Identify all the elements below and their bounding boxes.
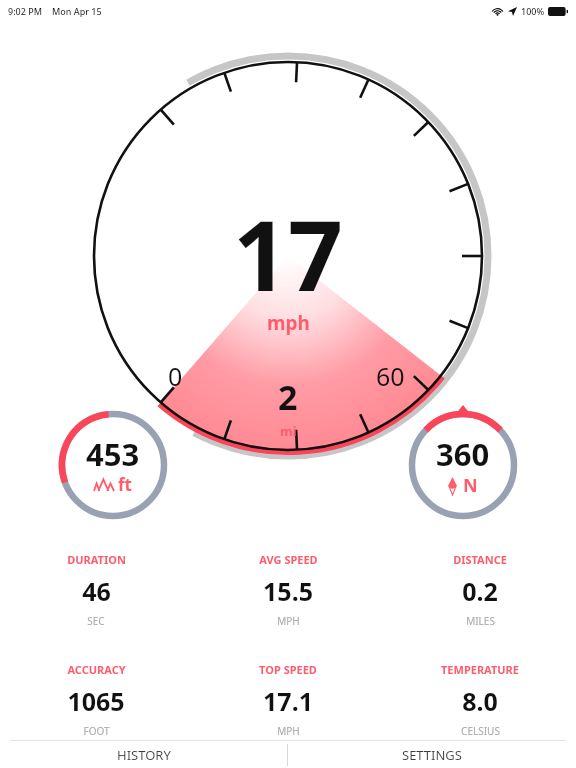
staticText: 0 [168,359,183,393]
button[interactable]: TOP SPEED [192,660,384,740]
staticText: mi [280,422,297,440]
button[interactable]: ACCURACY [0,660,192,740]
staticText: 1065 [67,684,125,718]
staticText: 46 [82,574,111,608]
button[interactable]: HISTORY [0,741,287,768]
staticText: 360 [436,433,490,475]
staticText: DURATION [67,552,126,567]
button[interactable]: TEMPERATURE [384,660,576,740]
staticText: CELSIUS [461,724,500,738]
staticText: 0.2 [462,574,498,608]
staticText: ACCURACY [67,662,126,677]
button[interactable]: SETTINGS [288,741,576,768]
staticText: SEC [87,614,105,628]
staticText: 100% [521,5,545,17]
staticText: Mon Apr 15 [52,5,102,17]
staticText: MPH [277,614,300,628]
staticText: MPH [277,724,300,738]
staticText: FOOT [83,724,110,738]
button[interactable]: DISTANCE [384,550,576,630]
button[interactable]: AVG SPEED [192,550,384,630]
staticText: 8.0 [462,684,498,718]
staticText: MILES [466,614,495,628]
staticText: SETTINGS [402,746,462,764]
staticText: 17.1 [263,684,313,718]
staticText: ft [118,473,132,496]
staticText: TOP SPEED [259,662,317,677]
staticText: DISTANCE [453,552,507,567]
staticText: AVG SPEED [259,552,318,567]
staticText: 15.5 [263,574,313,608]
staticText: HISTORY [117,746,171,764]
staticText: 453 [86,433,140,475]
staticText: 2 [278,374,298,420]
staticText: 9:02 PM [8,5,42,17]
staticText: TEMPERATURE [441,662,519,677]
staticText: mph [267,310,310,336]
button[interactable]: Altitude 453 feet [57,409,169,521]
staticText: 17 [233,188,343,319]
staticText: 60 [376,359,405,393]
button[interactable]: Heading 360 degrees north [407,409,519,521]
staticText: N [463,473,478,498]
button[interactable]: DURATION [0,550,192,630]
